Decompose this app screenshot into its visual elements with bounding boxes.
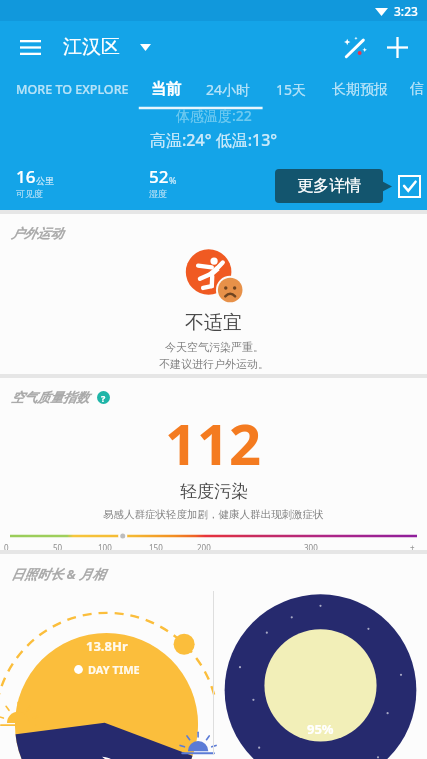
staticText: DAY TIME (88, 662, 140, 677)
button[interactable]: 当前 (148, 73, 184, 106)
staticText: 200 (197, 542, 211, 550)
staticText: 300 (304, 542, 318, 550)
staticText: 体感温度:22 (176, 106, 252, 125)
staticText: 长期预报 (332, 81, 388, 99)
staticText: 不适宜 (185, 311, 242, 335)
staticText: 信息 (410, 80, 424, 99)
staticText: 24小时 (206, 80, 251, 99)
button[interactable]: Daylight duration (0, 587, 213, 759)
button[interactable]: Expand details (397, 174, 422, 199)
staticText: 湿度 (149, 188, 167, 199)
staticText: 西1.0 (282, 165, 324, 188)
button[interactable]: MORE TO EXPLORE (13, 74, 132, 105)
staticText: 3:23 (394, 3, 418, 19)
staticText: 公里 (36, 175, 54, 186)
staticText: 100 (98, 542, 112, 550)
staticText: 空气质量指数 (11, 389, 89, 405)
staticText: 日照时长 & 月相 (11, 565, 105, 583)
staticText: % (169, 174, 177, 186)
staticText: 52 (149, 165, 169, 188)
button[interactable]: 15天 (273, 73, 310, 106)
staticText: 易感人群症状轻度加剧，健康人群出现刺激症状 (103, 508, 324, 521)
staticText: ? (101, 392, 106, 404)
button[interactable]: 长期预报 (329, 74, 391, 106)
staticText: 户外运动 (11, 225, 63, 241)
staticText: 50 (53, 542, 63, 550)
staticText: 13.8Hr (86, 637, 128, 655)
button[interactable]: 信息 (407, 73, 427, 106)
button[interactable]: Add location (380, 30, 414, 64)
button[interactable]: 江汉区 (63, 29, 151, 65)
staticText: 高温:24° 低温:13° (150, 129, 278, 151)
staticText: 轻度污染 (180, 481, 248, 502)
staticText: 0 (4, 542, 9, 550)
staticText: 15天 (276, 80, 307, 99)
staticText: 可见度 (16, 188, 43, 199)
staticText: 更多详情 (297, 176, 361, 196)
button[interactable]: Moon phase (214, 587, 427, 759)
button[interactable]: Magic (336, 28, 374, 66)
staticText: 不建议进行户外运动。 (159, 357, 269, 371)
button[interactable]: Menu (13, 30, 47, 64)
staticText: MORE TO EXPLORE (16, 81, 129, 98)
staticText: 当前 (151, 80, 181, 99)
staticText: 150 (149, 542, 163, 550)
staticText: + (410, 542, 415, 550)
button[interactable]: 24小时 (203, 73, 254, 106)
staticText: 米/秒 (324, 174, 346, 186)
staticText: 今天空气污染严重。 (165, 340, 264, 354)
button[interactable]: 更多详情 (275, 169, 383, 203)
staticText: 风况 (282, 188, 300, 199)
staticText: 95% (307, 720, 334, 738)
staticText: 112 (165, 405, 262, 481)
staticText: 江汉区 (63, 35, 120, 59)
button[interactable]: Help (97, 391, 110, 404)
staticText: 16 (16, 165, 36, 188)
